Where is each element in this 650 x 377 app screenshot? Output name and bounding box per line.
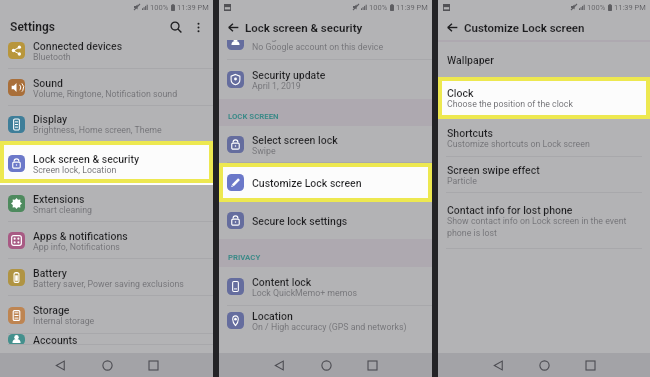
staticText: April 1, 2019 [252,81,301,91]
staticText: Extensions [33,193,85,205]
staticText: Contact info for lost phone [447,204,573,216]
staticText: Bluetooth [33,52,71,62]
staticText: Particle [447,176,477,186]
staticText: LOCK SCREEN [228,112,279,121]
staticText: Wallpaper [447,54,494,66]
button[interactable]: Sound [0,69,213,106]
staticText: Storage [33,304,70,316]
staticText: Security update [252,69,326,81]
staticText: Content lock [252,276,312,288]
button[interactable]: Home [315,354,337,376]
staticText: Screen swipe effect [447,164,540,176]
staticText: No Google account on this device [252,42,384,52]
staticText: Customize Lock screen [252,177,362,189]
staticText: Accounts [33,334,78,345]
staticText: 11:39 PM [396,3,428,12]
staticText: Clock [447,87,474,99]
button[interactable]: Screen swipe effect [438,157,650,193]
button[interactable]: Search [165,16,187,38]
button[interactable]: Location [219,306,432,335]
button[interactable]: Recent apps [142,354,164,376]
staticText: Swipe [252,146,276,156]
button[interactable]: Connected devices [0,40,213,69]
button[interactable]: Home [96,354,118,376]
staticText: Shortcuts [447,127,493,139]
button[interactable]: Apps & notifications [0,222,213,259]
staticText: Customize Lock screen [464,21,585,34]
staticText: On / High accuracy (GPS and networks) [252,322,407,332]
button[interactable]: Lock screen & security [0,142,213,185]
button[interactable]: Back [49,354,71,376]
button[interactable]: Clock [438,77,650,119]
button[interactable]: Google account [219,40,432,60]
staticText: Sound [33,77,63,89]
button[interactable]: Secure lock settings [219,202,432,239]
button[interactable]: Recent apps [361,354,383,376]
staticText: PRIVACY [228,253,261,262]
button[interactable]: Home [533,354,555,376]
staticText: Show contact info on Lock screen in the … [447,216,640,238]
staticText: Internal storage [33,316,95,326]
staticText: Connected devices [33,40,123,52]
staticText: Lock screen & security [33,153,140,165]
button[interactable]: Storage [0,296,213,334]
staticText: App info, Notifications [33,242,120,252]
staticText: Apps & notifications [33,230,128,242]
staticText: Lock QuickMemo+ memos [252,288,358,298]
staticText: 100% [369,3,388,12]
staticText: Customize shortcuts on Lock screen [447,139,590,149]
staticText: Settings [10,20,55,34]
button[interactable]: Security update [219,60,432,99]
staticText: Select screen lock [252,134,338,146]
button[interactable]: Back [487,354,509,376]
button[interactable]: Battery [0,259,213,296]
staticText: Lock screen & security [245,21,363,34]
button[interactable]: Extensions [0,185,213,222]
button[interactable]: Content lock [219,267,432,306]
staticText: Secure lock settings [252,215,348,227]
button[interactable]: Wallpaper [438,42,650,77]
staticText: Choose the position of the clock [447,99,573,109]
staticText: Location [252,310,293,322]
button[interactable]: Recent apps [579,354,601,376]
button[interactable]: Contact info for lost phone [438,193,650,249]
button[interactable]: Select screen lock [219,126,432,163]
button[interactable]: Navigate up [224,18,242,36]
button[interactable]: Back [268,354,290,376]
staticText: 100% [150,3,169,12]
staticText: Screen lock, Location [33,165,117,175]
button[interactable]: More options [187,16,209,38]
button[interactable]: Navigate up [443,18,461,36]
staticText: Smart cleaning [33,205,92,215]
staticText: Battery [33,267,67,279]
staticText: Volume, Ringtone, Notification sound [33,89,178,99]
staticText: Display [33,113,68,125]
button[interactable]: Shortcuts [438,119,650,157]
staticText: Brightness, Home screen, Theme [33,125,162,135]
staticText: 100% [587,3,606,12]
staticText: Google account [252,40,326,42]
button[interactable]: Display [0,106,213,142]
button[interactable]: Accounts [0,334,213,345]
button[interactable]: Customize Lock screen [219,163,432,202]
staticText: Battery saver, Power saving exclusions [33,279,184,289]
staticText: 11:39 PM [614,3,646,12]
staticText: 11:39 PM [177,3,209,12]
